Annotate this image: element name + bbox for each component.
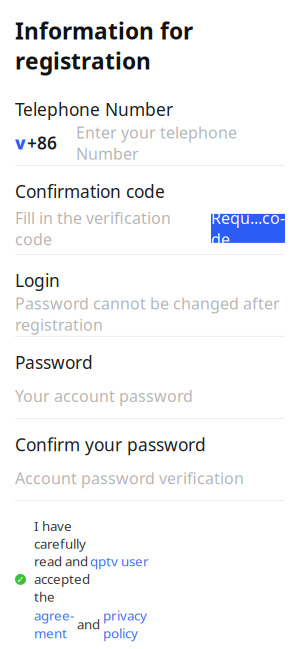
staticText: Login [15, 269, 60, 292]
staticText: qptv user [90, 552, 149, 570]
staticText: Telephone Number [15, 98, 173, 121]
staticText: Your account password [15, 385, 193, 406]
staticText: Requ...code [211, 207, 285, 250]
staticText: Information for registration [15, 16, 193, 76]
staticText: Confirmation code [15, 180, 165, 203]
staticText: Account password verification [15, 467, 244, 488]
button[interactable]: Select country code [15, 133, 57, 153]
button[interactable]: privacy policy [103, 606, 147, 642]
staticText: Password [15, 351, 93, 374]
staticText: +86 [27, 131, 57, 154]
staticText: agreement [34, 606, 74, 642]
staticText: and [74, 615, 103, 633]
staticText: v [15, 131, 26, 154]
staticText: I have carefully read and accepted the [34, 517, 90, 605]
button[interactable]: qptv user [90, 552, 149, 570]
staticText: Enter your telephone Number [76, 122, 237, 164]
staticText: privacy policy [103, 606, 147, 642]
button[interactable]: agreement [34, 606, 74, 642]
staticText: Confirm your password [15, 433, 206, 456]
staticText: ✓ [16, 574, 24, 585]
staticText: Password cannot be changed after registr… [15, 293, 280, 335]
button[interactable]: Requ...code [211, 214, 285, 243]
staticText: Fill in the verification code [15, 207, 171, 250]
